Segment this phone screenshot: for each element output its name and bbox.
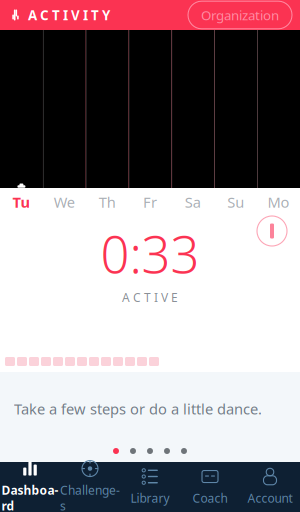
staticText: A C T I V E xyxy=(122,289,178,305)
button[interactable]: Library xyxy=(120,463,180,510)
staticText: Organization xyxy=(201,6,279,24)
button[interactable]: Sa xyxy=(171,190,214,214)
button[interactable]: Tu xyxy=(0,190,43,214)
staticText: Library xyxy=(130,490,169,506)
staticText: Mo xyxy=(268,192,290,212)
staticText: Coach xyxy=(192,490,227,506)
button[interactable]: Organization xyxy=(188,1,292,29)
staticText: We xyxy=(54,192,75,212)
button[interactable]: Coach xyxy=(180,463,240,510)
staticText: A C T I V I T Y xyxy=(28,6,110,24)
button[interactable]: Dashboard xyxy=(0,463,60,510)
staticText: Th xyxy=(99,192,116,212)
staticText: 0:33 xyxy=(100,220,199,287)
button[interactable]: We xyxy=(43,190,86,214)
button[interactable]: Edit xyxy=(255,214,289,248)
button[interactable]: Challenges xyxy=(60,463,120,510)
button[interactable]: Th xyxy=(86,190,129,214)
staticText: Take a few steps or do a little dance. xyxy=(14,399,262,418)
staticText: Sa xyxy=(185,192,201,212)
staticText: Tu xyxy=(12,192,30,212)
button[interactable]: Mo xyxy=(257,190,300,214)
button[interactable]: Account xyxy=(240,463,300,510)
staticText: Challenges xyxy=(60,482,120,512)
staticText: Fr xyxy=(143,192,157,212)
button[interactable]: Fr xyxy=(129,190,171,214)
staticText: Su xyxy=(227,192,244,212)
staticText: Dashboard xyxy=(1,482,58,512)
button[interactable]: Su xyxy=(214,190,257,214)
staticText: Account xyxy=(247,490,292,506)
